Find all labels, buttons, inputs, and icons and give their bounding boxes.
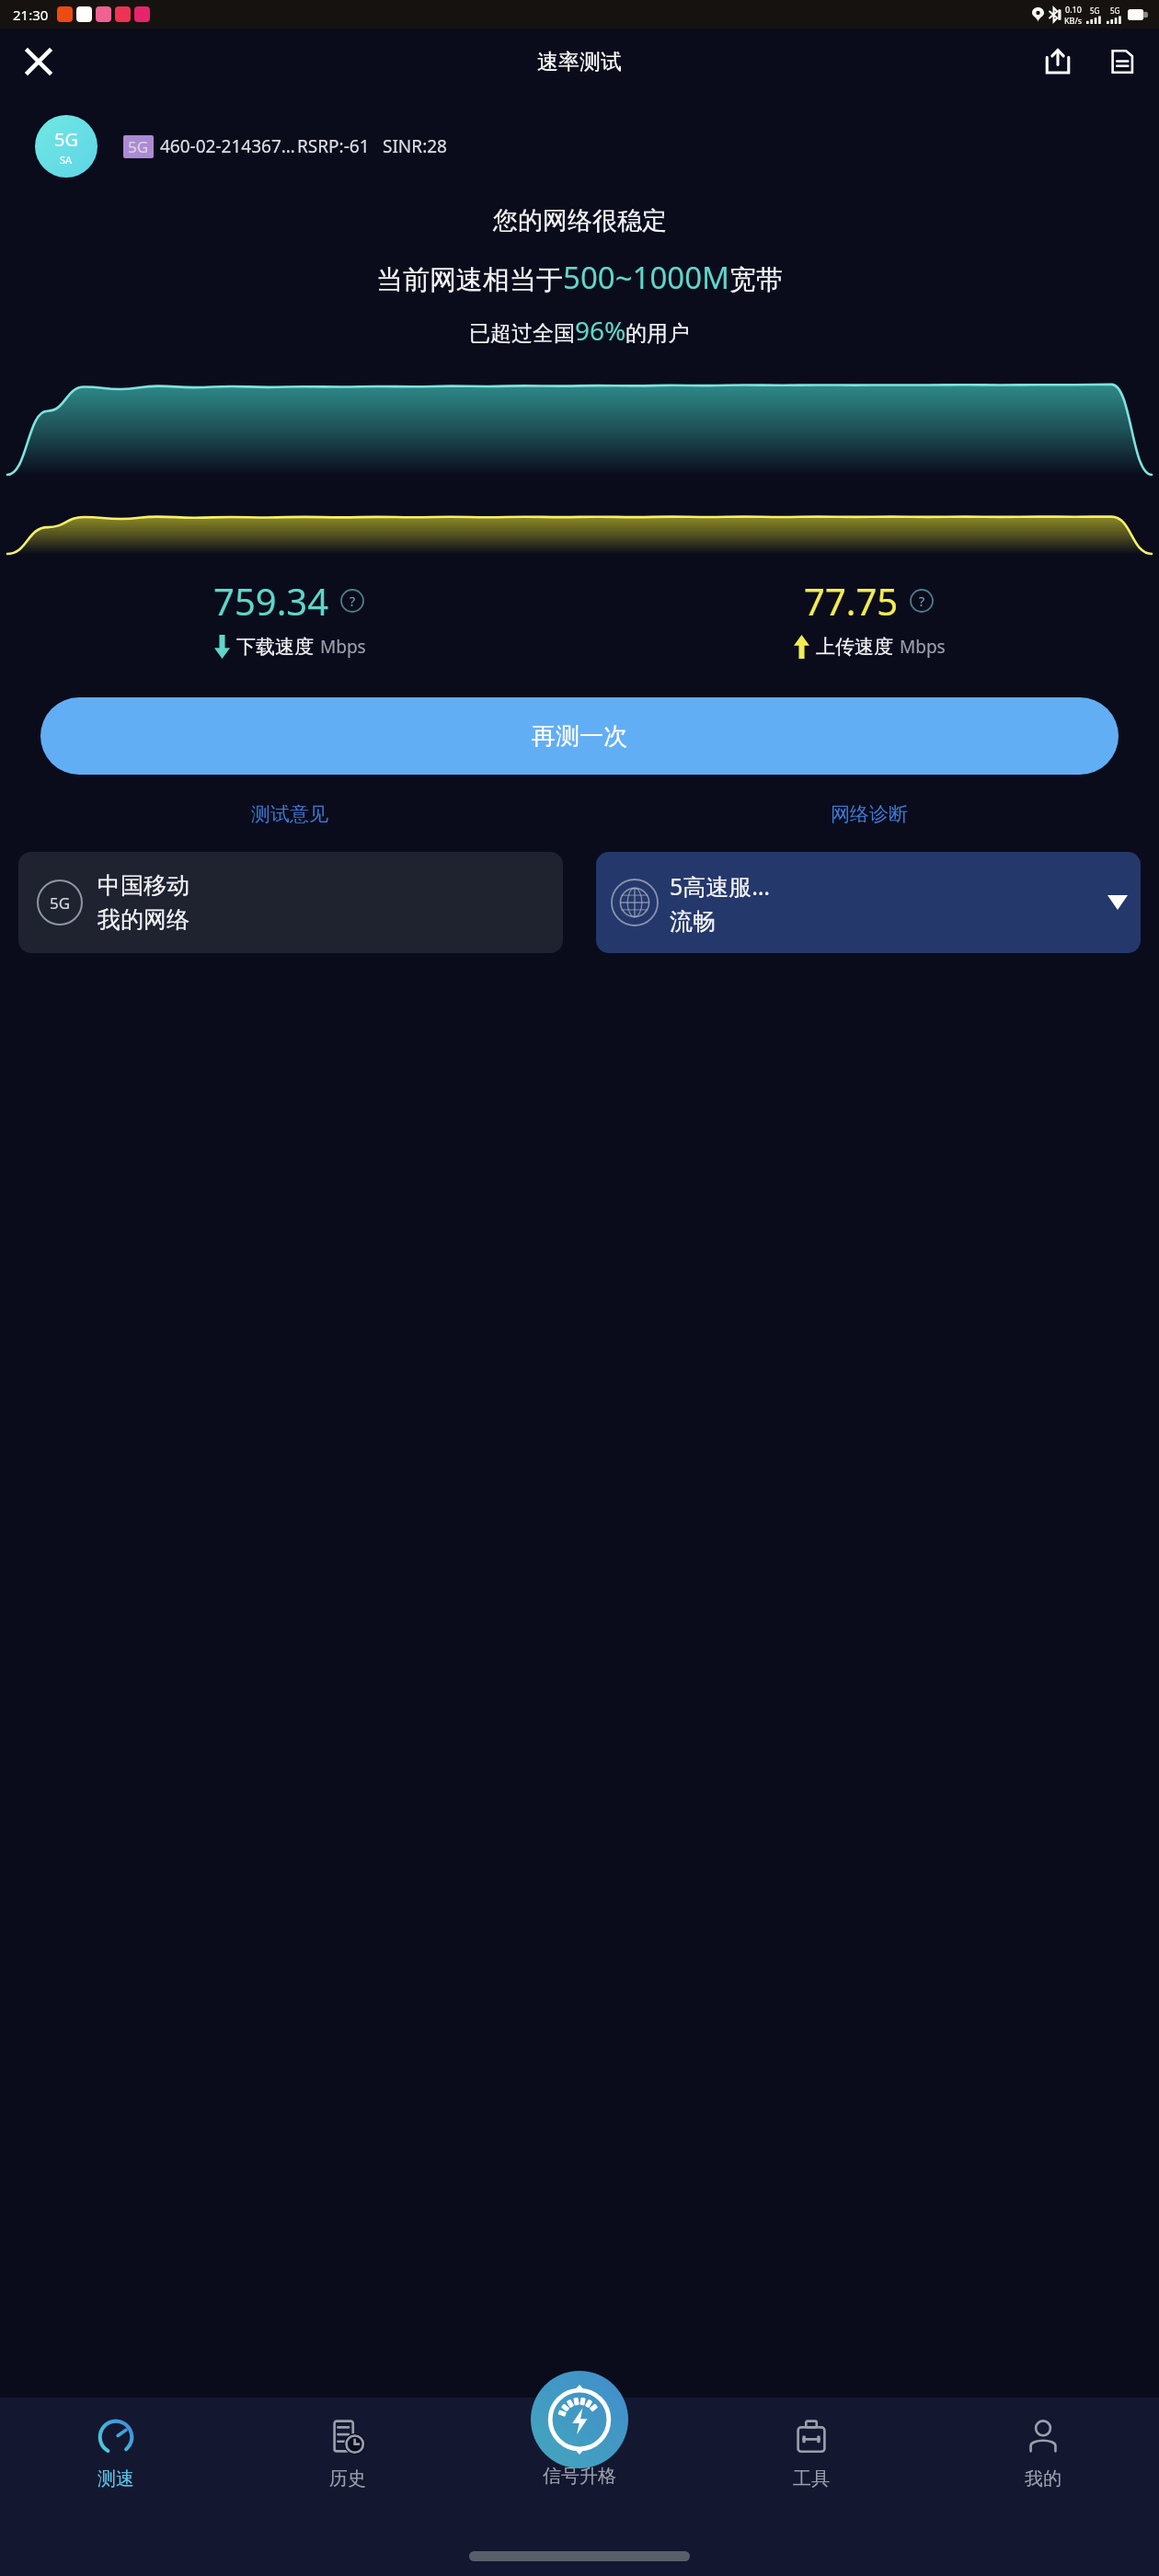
button[interactable]: 历史 — [232, 2414, 464, 2576]
button[interactable]: Share — [1034, 38, 1082, 86]
staticText: ? — [919, 592, 925, 610]
staticText: 再测一次 — [532, 721, 627, 752]
button[interactable]: 网络诊断 — [812, 795, 926, 834]
staticText: 流畅 — [670, 907, 716, 936]
staticText: 5G — [54, 127, 78, 152]
staticText: Mbps — [320, 635, 366, 659]
staticText: 您的网络很稳定 — [493, 205, 667, 236]
staticText: 我的 — [1025, 2467, 1061, 2490]
staticText: 0.10 — [1065, 4, 1082, 15]
staticText: 测试意见 — [251, 802, 328, 826]
button[interactable]: Close — [13, 36, 64, 87]
button[interactable]: Info — [908, 587, 935, 615]
staticText: 当前网速相当于500~1000M宽带 — [376, 257, 783, 298]
button[interactable]: 再测一次 — [40, 697, 1119, 775]
button[interactable]: Info — [339, 587, 366, 615]
staticText: 5G — [1110, 6, 1120, 16]
staticText: 我的网络 — [98, 905, 189, 934]
staticText: 速率测试 — [537, 49, 622, 75]
staticText: SA — [60, 153, 73, 167]
staticText: RSRP:-61 — [297, 134, 370, 158]
staticText: 下载速度 — [236, 635, 314, 659]
button[interactable]: Report — [1098, 38, 1146, 86]
staticText: Mbps — [900, 635, 946, 659]
button[interactable]: 我的 — [927, 2414, 1159, 2576]
button[interactable]: 信号升格 — [531, 2371, 628, 2468]
staticText: 5G — [50, 892, 71, 914]
staticText: 5G — [128, 136, 149, 157]
button[interactable]: 测速 — [0, 2414, 232, 2576]
staticText: 460-02-214367… — [160, 134, 295, 158]
staticText: 测速 — [98, 2467, 134, 2490]
staticText: 工具 — [793, 2467, 830, 2490]
staticText: KB/s — [1064, 15, 1083, 26]
staticText: 5G — [1090, 6, 1100, 16]
staticText: 信号升格 — [543, 2465, 616, 2488]
button[interactable]: 5高速服… — [596, 852, 1141, 953]
staticText: 5高速服… — [670, 870, 771, 902]
staticText: 中国移动 — [98, 871, 189, 900]
staticText: 历史 — [329, 2467, 366, 2490]
button[interactable]: 工具 — [695, 2414, 927, 2576]
staticText: 上传速度 — [816, 635, 893, 659]
staticText: 已超过全国96%的用户 — [469, 313, 690, 348]
staticText: 21:30 — [13, 6, 49, 24]
staticText: 77.75 — [804, 576, 899, 626]
staticText: 759.34 — [213, 576, 329, 626]
staticText: ? — [350, 592, 356, 610]
staticText: 网络诊断 — [831, 802, 908, 826]
button[interactable]: 测试意见 — [233, 795, 347, 834]
button[interactable]: 5G — [18, 852, 563, 953]
staticText: SINR:28 — [383, 134, 447, 158]
